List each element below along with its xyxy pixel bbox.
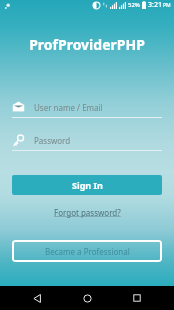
- staticText: Became a Professional: [45, 246, 130, 257]
- staticText: PM: [163, 2, 171, 9]
- staticText: ProfProviderPHP: [29, 35, 145, 54]
- button[interactable]: Password: [12, 130, 162, 150]
- button[interactable]: Home: [74, 286, 100, 310]
- staticText: Forgot password?: [54, 207, 121, 218]
- staticText: 3:21: [148, 0, 162, 10]
- staticText: 52%: [128, 1, 140, 9]
- other: Email: [12, 101, 25, 114]
- button[interactable]: Forgot password?: [50, 205, 125, 220]
- button[interactable]: Email: [12, 97, 162, 117]
- button[interactable]: Sign In: [12, 175, 162, 195]
- button[interactable]: Recent apps: [124, 286, 150, 310]
- staticText: Sign In: [72, 179, 103, 191]
- staticText: Password: [34, 135, 71, 146]
- other: Password: [12, 134, 25, 147]
- button[interactable]: Became a Professional: [12, 240, 162, 262]
- button[interactable]: Back: [24, 286, 50, 310]
- staticText: User name / Email: [34, 102, 103, 113]
